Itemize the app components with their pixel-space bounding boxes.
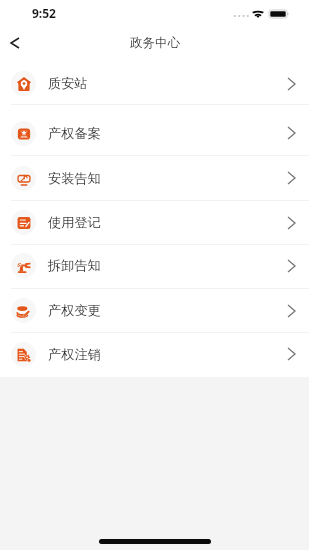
button[interactable]: 拆卸告知 [0,245,309,289]
button[interactable]: 产权注销 [0,333,309,377]
staticText: 产权注销 [48,346,101,363]
staticText: 使用登记 [48,214,101,231]
staticText: 政务中心 [130,35,180,51]
button[interactable]: 产权备案 [0,105,309,156]
staticText: 产权备案 [48,125,101,142]
staticText: 拆卸告知 [48,257,101,274]
button[interactable]: 使用登记 [0,201,309,245]
staticText: 安装告知 [48,170,101,187]
button[interactable]: 质安站 [0,61,309,105]
staticText: 产权变更 [48,302,101,319]
button[interactable]: 产权变更 [0,289,309,333]
staticText: 质安站 [48,75,88,92]
button[interactable]: 安装告知 [0,156,309,201]
button[interactable]: Back [0,28,30,58]
staticText: 9:52 [32,5,56,21]
